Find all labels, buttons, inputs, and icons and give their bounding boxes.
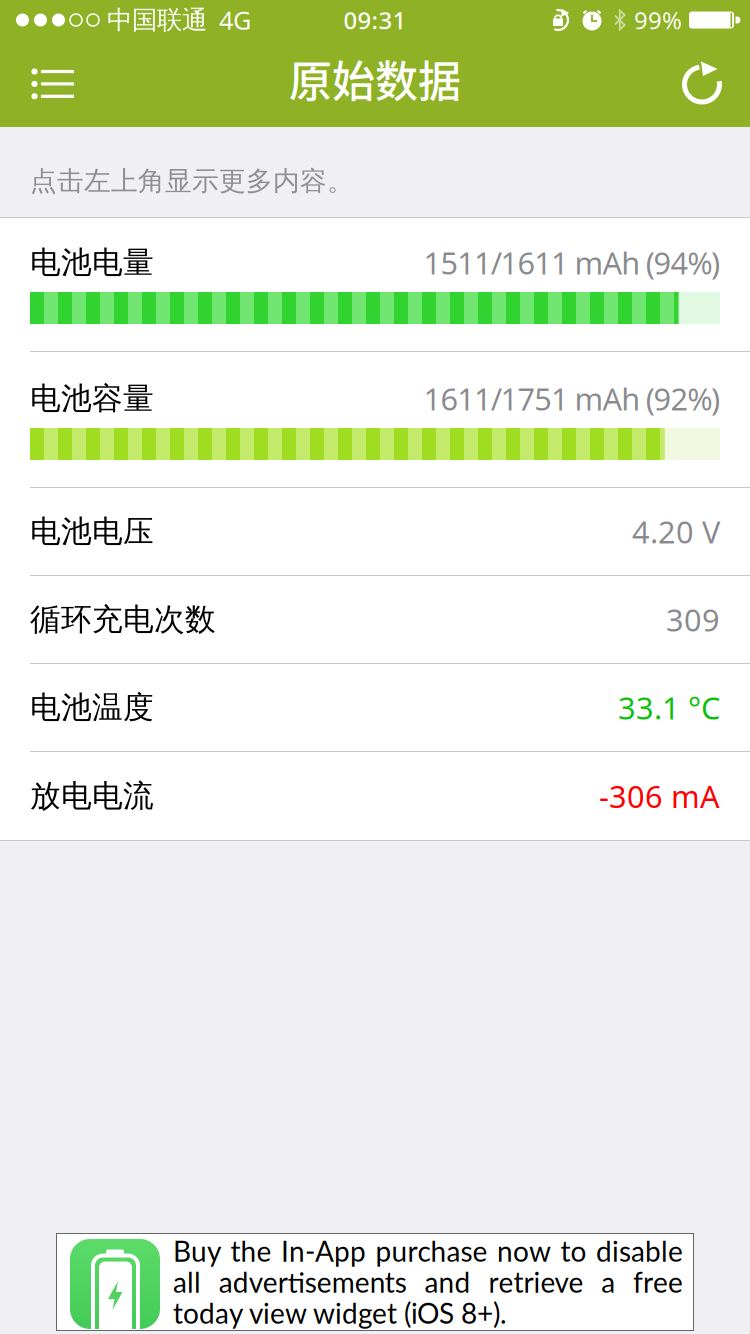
staticText: and [425, 1265, 471, 1299]
staticText: advertisements [219, 1265, 407, 1299]
staticText: 中国联通 [107, 4, 207, 35]
staticText: purchase [375, 1234, 487, 1268]
button[interactable]: Menu [0, 45, 76, 121]
staticText: now [497, 1234, 551, 1268]
button[interactable]: Buy the In-App purchase [56, 1233, 694, 1331]
staticText: to [560, 1234, 586, 1268]
staticText: 电池电压 [30, 513, 154, 550]
staticText: free [633, 1265, 683, 1299]
staticText: 电池电量 [30, 244, 154, 281]
staticText: Buy [173, 1234, 221, 1268]
staticText: 309 [666, 599, 720, 640]
staticText: 原始数据 [289, 47, 461, 110]
staticText: retrieve [488, 1265, 583, 1299]
staticText: 1511/1611 mAh (94%) [424, 242, 720, 283]
staticText: 4G [219, 3, 251, 37]
staticText: 电池容量 [30, 380, 154, 417]
staticText: 放电电流 [30, 777, 154, 815]
staticText: 33.1 °C [618, 687, 720, 728]
staticText: 1611/1751 mAh (92%) [424, 378, 720, 419]
staticText: 09:31 [343, 4, 406, 36]
staticText: 电池温度 [30, 689, 154, 726]
staticText: 99% [634, 4, 682, 36]
staticText: 4.20 V [632, 511, 720, 552]
staticText: 循环充电次数 [30, 601, 216, 638]
staticText: the [230, 1234, 271, 1268]
staticText: 点击左上角显示更多内容。 [30, 165, 354, 197]
button[interactable]: Refresh [682, 41, 750, 125]
staticText: disable [596, 1234, 683, 1268]
staticText: today view widget (iOS 8+). [173, 1296, 507, 1330]
staticText: -306 mA [599, 776, 720, 816]
staticText: all [173, 1265, 201, 1299]
staticText: In-App [281, 1234, 366, 1268]
staticText: a [601, 1265, 615, 1299]
